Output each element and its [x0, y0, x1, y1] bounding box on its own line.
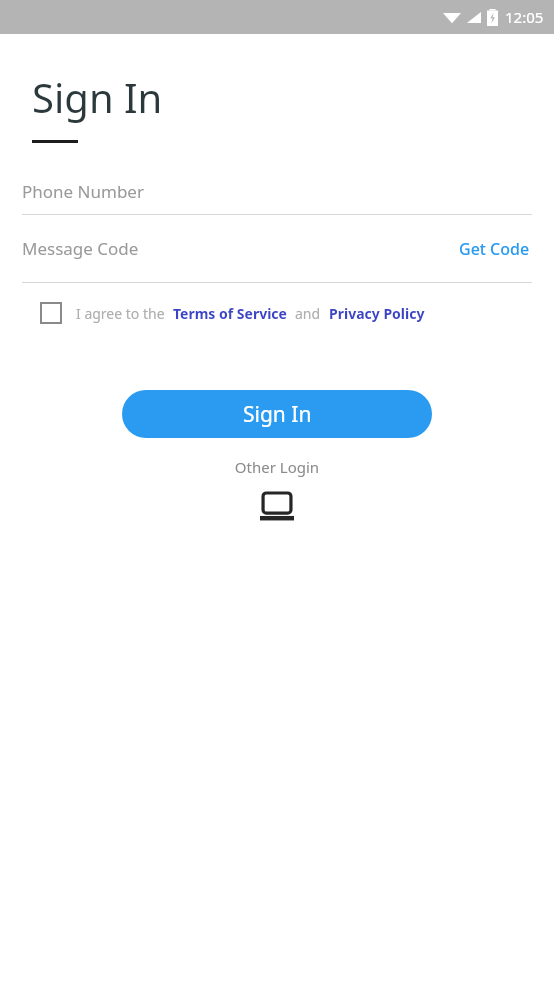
button[interactable]: Get Code [457, 232, 532, 266]
button[interactable]: Message Code [22, 237, 457, 260]
button[interactable]: Agree to terms checkbox [40, 302, 62, 324]
staticText: Sign In [32, 70, 163, 124]
button[interactable]: Terms of Service [173, 304, 287, 323]
staticText: Sign In [243, 400, 312, 429]
staticText: I agree to the [76, 304, 165, 323]
staticText: Phone Number [22, 180, 144, 203]
staticText: Other Login [0, 457, 554, 477]
staticText: Privacy Policy [329, 304, 425, 323]
staticText: and [295, 304, 321, 323]
button[interactable]: Login with computer [257, 491, 297, 523]
staticText: Get Code [459, 238, 530, 260]
staticText: Message Code [22, 237, 139, 260]
button[interactable]: Phone Number [22, 168, 532, 214]
button[interactable]: Privacy Policy [329, 304, 425, 323]
button[interactable]: Sign In [122, 390, 432, 438]
staticText: 12:05 [505, 7, 544, 27]
staticText: Terms of Service [173, 304, 287, 323]
